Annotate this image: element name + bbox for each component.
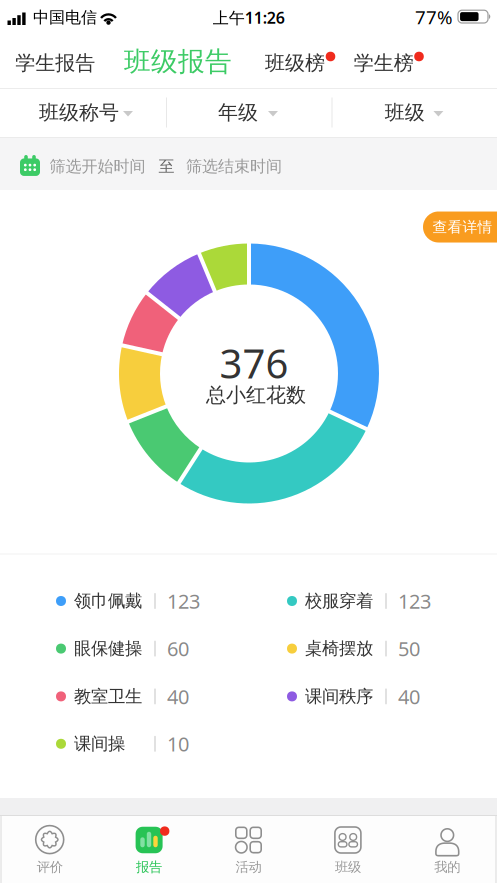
staticText: 领巾佩戴 (74, 590, 142, 612)
button[interactable]: 学生报告 (9, 38, 101, 88)
button[interactable]: 报告 (103, 816, 195, 882)
staticText: 50 (398, 635, 420, 662)
staticText: 眼保健操 (74, 638, 142, 659)
staticText: 查看详情 (432, 218, 492, 236)
button[interactable]: 查看详情 (423, 211, 497, 242)
staticText: 中国电信 (33, 8, 97, 27)
staticText: 课间秩序 (305, 686, 373, 707)
staticText: 60 (167, 635, 189, 662)
staticText: 总小红花数 (206, 383, 306, 407)
staticText: 学生报告 (15, 51, 95, 75)
staticText: 班级榜 (265, 51, 325, 75)
staticText: 桌椅摆放 (305, 638, 373, 659)
button[interactable]: 班级 (302, 816, 394, 882)
staticText: 筛选结束时间 (186, 157, 282, 176)
staticText: 筛选开始时间 (49, 157, 145, 176)
staticText: 教室卫生 (74, 686, 142, 707)
staticText: 班级 (335, 859, 361, 875)
button[interactable]: 班级 (331, 88, 496, 137)
button[interactable]: 班级榜 (261, 38, 329, 88)
staticText: 班级称号 (39, 100, 119, 125)
button[interactable]: 班级称号 (0, 88, 165, 137)
staticText: 上午11:26 (213, 7, 285, 28)
staticText: 评价 (37, 859, 63, 875)
staticText: 报告 (136, 859, 162, 875)
button[interactable]: 学生榜 (350, 38, 418, 88)
button[interactable]: 班级报告 (117, 36, 239, 86)
staticText: 我的 (434, 859, 460, 875)
staticText: 77% (415, 5, 453, 29)
button[interactable]: 我的 (401, 816, 493, 882)
button[interactable]: 评价 (4, 816, 96, 882)
staticText: 376 (219, 336, 288, 389)
button[interactable]: 年级 (166, 88, 331, 137)
staticText: 课间操 (74, 733, 125, 754)
button[interactable]: 筛选开始时间 (0, 138, 497, 190)
staticText: 年级 (218, 100, 258, 125)
staticText: 班级报告 (124, 45, 232, 78)
staticText: 班级 (385, 100, 425, 125)
staticText: 123 (398, 588, 431, 614)
button[interactable]: 活动 (202, 816, 294, 882)
staticText: 学生榜 (354, 51, 414, 75)
staticText: 40 (398, 683, 420, 710)
staticText: 40 (167, 683, 189, 710)
staticText: 123 (167, 588, 200, 614)
staticText: 活动 (235, 859, 261, 875)
staticText: 10 (167, 730, 189, 757)
staticText: 至 (158, 157, 174, 176)
staticText: 校服穿着 (305, 590, 373, 612)
